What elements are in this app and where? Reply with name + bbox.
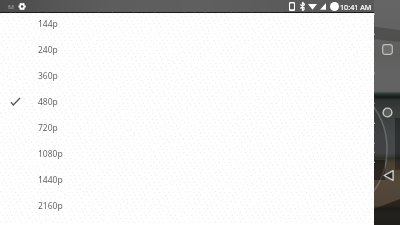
staticText: 144p (38, 18, 58, 30)
button[interactable]: 2160p (0, 193, 374, 219)
staticText: 1440p (38, 174, 63, 186)
staticText: 480p (38, 96, 58, 108)
button[interactable]: 1080p (0, 141, 374, 167)
button[interactable]: Back (383, 170, 394, 181)
staticText: 2160p (38, 200, 63, 212)
staticText: 1080p (38, 148, 63, 160)
button[interactable]: Gallery (382, 44, 393, 55)
staticText: 240p (38, 44, 58, 56)
staticText: 360p (38, 70, 58, 82)
button[interactable]: 720p (0, 115, 374, 141)
button[interactable]: 144p (0, 11, 374, 37)
button[interactable]: 360p (0, 63, 374, 89)
button[interactable]: Shutter (382, 107, 393, 118)
staticText: 720p (38, 122, 58, 134)
button[interactable]: 1440p (0, 167, 374, 193)
button[interactable]: 240p (0, 37, 374, 63)
button[interactable]: 480p (0, 89, 374, 115)
staticText: 10:41 AM (340, 2, 372, 12)
